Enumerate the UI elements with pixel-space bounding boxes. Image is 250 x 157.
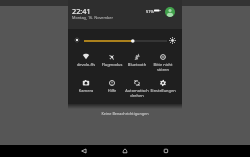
staticText: Bitte nicht stören (149, 62, 177, 72)
staticText: 51% (146, 9, 154, 14)
staticText: Bluetooth (123, 62, 151, 67)
button[interactable]: Einstellungen (149, 79, 177, 98)
staticText: Einstellungen (149, 88, 177, 93)
staticText: Flugmodus (98, 62, 126, 67)
button[interactable]: Hilfe (98, 79, 126, 98)
button[interactable]: Flugmodus (98, 53, 126, 72)
button[interactable]: Brightness (84, 36, 167, 46)
staticText: Automatisch drehen (123, 88, 151, 98)
button[interactable]: Back (73, 145, 95, 157)
button[interactable]: Automatisch drehen (123, 79, 151, 98)
button[interactable]: Kamera (72, 79, 100, 98)
button[interactable]: devolo-ffs (72, 53, 100, 72)
button[interactable]: Home (114, 145, 136, 157)
button[interactable]: Bluetooth (123, 53, 151, 72)
button[interactable]: Bitte nicht stören (149, 53, 177, 72)
staticText: Keine Benachrichtigungen (0, 111, 250, 116)
staticText: devolo-ffs (72, 62, 100, 67)
button[interactable]: User account (165, 7, 175, 17)
button[interactable]: Recent apps (155, 145, 177, 157)
staticText: Kamera (72, 88, 100, 93)
staticText: Hilfe (98, 88, 126, 93)
staticText: 22:41 (72, 6, 91, 16)
staticText: Montag, 16. November (72, 15, 114, 20)
